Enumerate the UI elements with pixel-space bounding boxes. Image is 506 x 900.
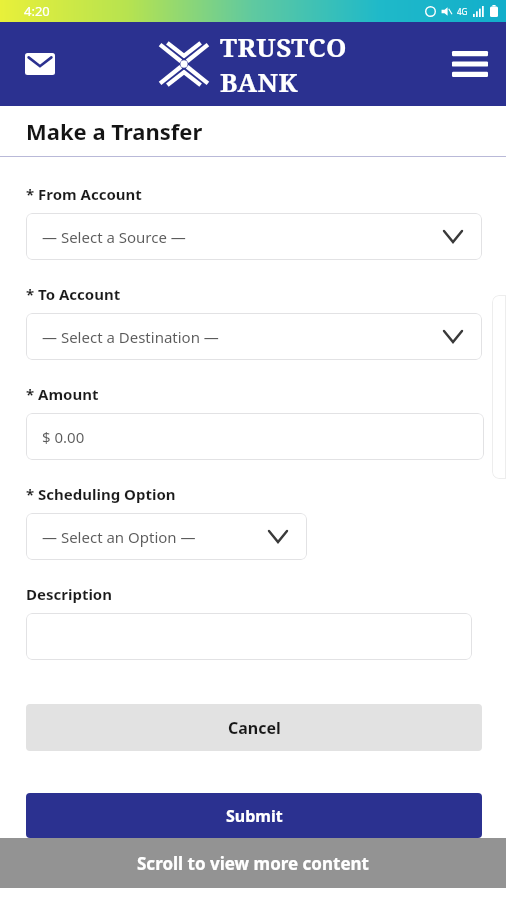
staticText: * Scheduling Option xyxy=(26,484,176,504)
button[interactable]: $ 0.00 xyxy=(26,413,484,460)
button[interactable]: Submit xyxy=(26,793,482,838)
button[interactable]: — Select a Source — xyxy=(26,213,482,260)
staticText: Submit xyxy=(226,805,283,827)
button[interactable]: — Select a Destination — xyxy=(26,313,482,360)
staticText: — Select a Source — xyxy=(42,227,186,247)
staticText: 4G xyxy=(457,6,468,17)
staticText: * Amount xyxy=(26,384,99,404)
staticText: 4:20 xyxy=(24,2,50,20)
button[interactable]: Messages xyxy=(16,40,64,88)
staticText: Make a Transfer xyxy=(26,116,203,146)
button[interactable]: — Select an Option — xyxy=(26,513,307,560)
button[interactable]: Scroll to view more content xyxy=(0,838,506,888)
staticText: — Select an Option — xyxy=(42,527,196,547)
staticText: BANK xyxy=(220,64,299,99)
staticText: Description xyxy=(26,584,112,604)
staticText: TRUSTCO xyxy=(220,29,348,64)
staticText: $ 0.00 xyxy=(42,427,85,447)
button[interactable]: Cancel xyxy=(26,704,482,751)
button[interactable]: Menu xyxy=(446,40,494,88)
staticText: Cancel xyxy=(228,717,281,739)
staticText: * From Account xyxy=(26,184,142,204)
button[interactable] xyxy=(26,613,472,660)
staticText: Scroll to view more content xyxy=(137,852,369,875)
staticText: * To Account xyxy=(26,284,121,304)
staticText: — Select a Destination — xyxy=(42,327,219,347)
